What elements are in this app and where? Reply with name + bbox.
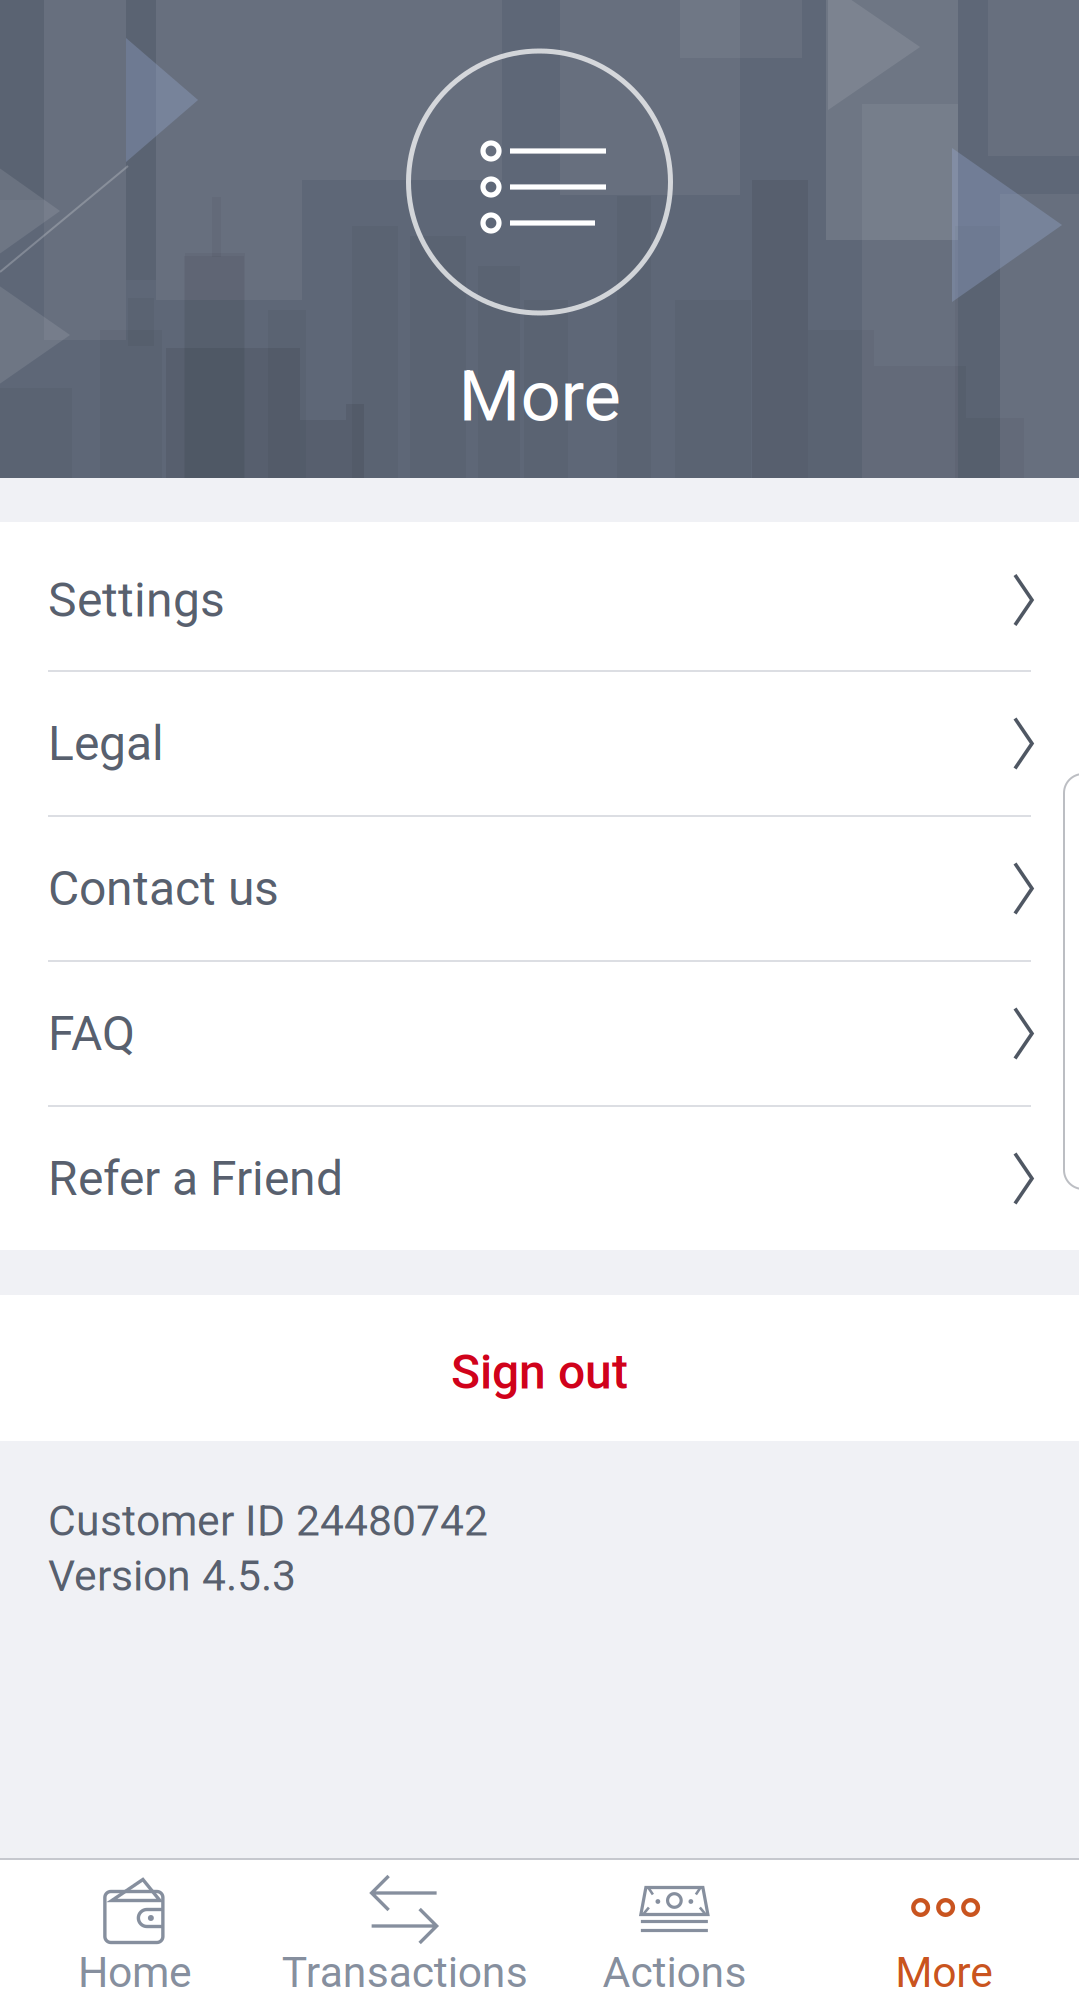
button[interactable]: Legal <box>0 672 1079 815</box>
staticText: Contact us <box>48 860 279 917</box>
staticText: Sign out <box>451 1344 628 1400</box>
staticText: Version 4.5.3 <box>48 1551 296 1601</box>
button[interactable]: FAQ <box>0 962 1079 1105</box>
staticText: More <box>895 1947 993 1997</box>
button[interactable]: Contact us <box>0 817 1079 960</box>
staticText: Settings <box>48 572 225 628</box>
staticText: More <box>458 355 620 438</box>
staticText: Legal <box>48 715 164 772</box>
button[interactable]: Home <box>0 1860 270 2005</box>
button[interactable]: More <box>809 1860 1079 2005</box>
staticText: FAQ <box>48 1005 135 1062</box>
staticText: Transactions <box>282 1947 528 1997</box>
staticText: Refer a Friend <box>48 1150 343 1207</box>
button[interactable]: Actions <box>539 1860 809 2005</box>
staticText: Actions <box>602 1947 746 1997</box>
button[interactable]: Settings <box>0 522 1079 670</box>
button[interactable]: Refer a Friend <box>0 1107 1079 1250</box>
staticText: Home <box>78 1947 192 1997</box>
button[interactable]: Transactions <box>270 1860 540 2005</box>
staticText: Customer ID 24480742 <box>48 1496 488 1546</box>
button[interactable]: Sign out <box>0 1295 1079 1441</box>
